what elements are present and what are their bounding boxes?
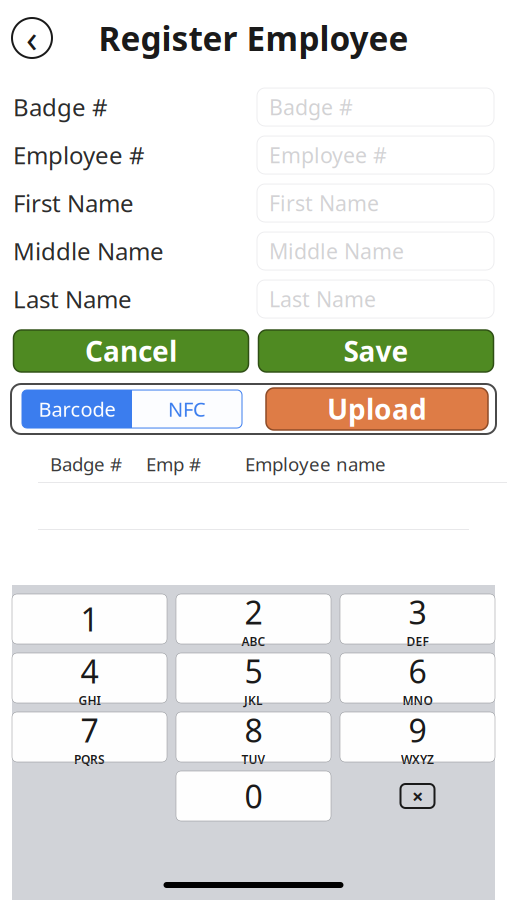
staticText: 8 [244,709,262,751]
staticText: 3 [408,591,426,633]
staticText: DEF [406,633,428,649]
staticText: Cancel [85,332,177,370]
button[interactable]: 2 [176,594,331,644]
button[interactable]: 1 [12,594,167,644]
button[interactable]: 9 [340,712,495,762]
staticText: Badge # [13,91,108,123]
staticText: ABC [241,633,265,649]
button[interactable]: Barcode [22,390,132,428]
staticText: NFC [168,396,206,422]
button[interactable]: 6 [340,653,495,703]
staticText: Employee # [13,139,145,171]
staticText: JKL [244,692,263,708]
staticText: 5 [244,650,262,692]
button[interactable]: Upload [266,388,488,430]
staticText: 9 [408,709,426,751]
staticText: MNO [402,692,432,708]
button[interactable]: 8 [176,712,331,762]
staticText: Badge # [50,452,122,476]
staticText: Upload [327,390,427,428]
staticText: Employee name [245,452,386,476]
staticText: × [412,783,423,809]
staticText: First Name [269,189,379,217]
staticText: 4 [80,650,98,692]
staticText: Middle Name [269,237,404,265]
button[interactable]: Last Name [257,280,494,318]
button[interactable]: Delete [340,771,495,821]
button[interactable]: 4 [12,653,167,703]
staticText: Emp # [146,452,201,476]
button[interactable]: Employee # [257,136,494,174]
button[interactable]: 0 [176,771,331,821]
staticText: Last Name [269,285,376,313]
staticText: 1 [80,598,98,640]
staticText: Save [343,332,408,370]
staticText: 0 [244,775,262,817]
staticText: Badge # [269,93,353,121]
button[interactable]: First Name [257,184,494,222]
button[interactable]: NFC [132,390,242,428]
button[interactable]: 7 [12,712,167,762]
staticText: Employee # [269,141,387,169]
button[interactable]: Back [10,16,54,60]
button[interactable]: 3 [340,594,495,644]
staticText: Register Employee [98,16,408,60]
staticText: GHI [78,692,100,708]
button[interactable]: Badge # [257,88,494,126]
staticText: Middle Name [13,235,164,267]
button[interactable]: Middle Name [257,232,494,270]
button[interactable]: Save [258,330,493,372]
staticText: 6 [408,650,426,692]
staticText: Barcode [38,396,115,422]
staticText: PQRS [74,751,105,767]
staticText: WXYZ [401,751,434,767]
staticText: 2 [244,591,262,633]
button[interactable]: 5 [176,653,331,703]
staticText: TUV [241,751,265,767]
staticText: Last Name [13,283,132,315]
staticText: First Name [13,187,134,219]
button[interactable]: Cancel [13,330,248,372]
staticText: ‹ [26,13,38,63]
staticText: 7 [80,709,98,751]
